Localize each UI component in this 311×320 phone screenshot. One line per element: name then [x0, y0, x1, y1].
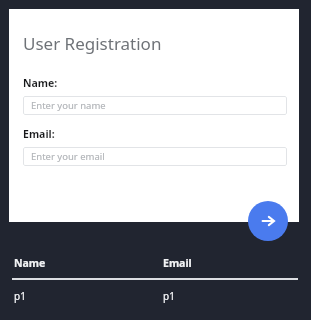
staticText: User Registration: [23, 32, 162, 55]
button[interactable]: Enter your name: [23, 96, 287, 115]
staticText: Email: [163, 256, 192, 270]
button[interactable]: Submit: [248, 201, 288, 241]
staticText: Email:: [23, 127, 55, 141]
button[interactable]: p1: [0, 289, 311, 303]
staticText: p1: [14, 289, 163, 303]
button[interactable]: Enter your email: [23, 147, 287, 166]
staticText: Name:: [23, 76, 58, 90]
staticText: Name: [14, 256, 163, 270]
staticText: p1: [163, 289, 175, 303]
staticText: Enter your name: [31, 99, 106, 112]
staticText: Enter your email: [31, 150, 105, 163]
